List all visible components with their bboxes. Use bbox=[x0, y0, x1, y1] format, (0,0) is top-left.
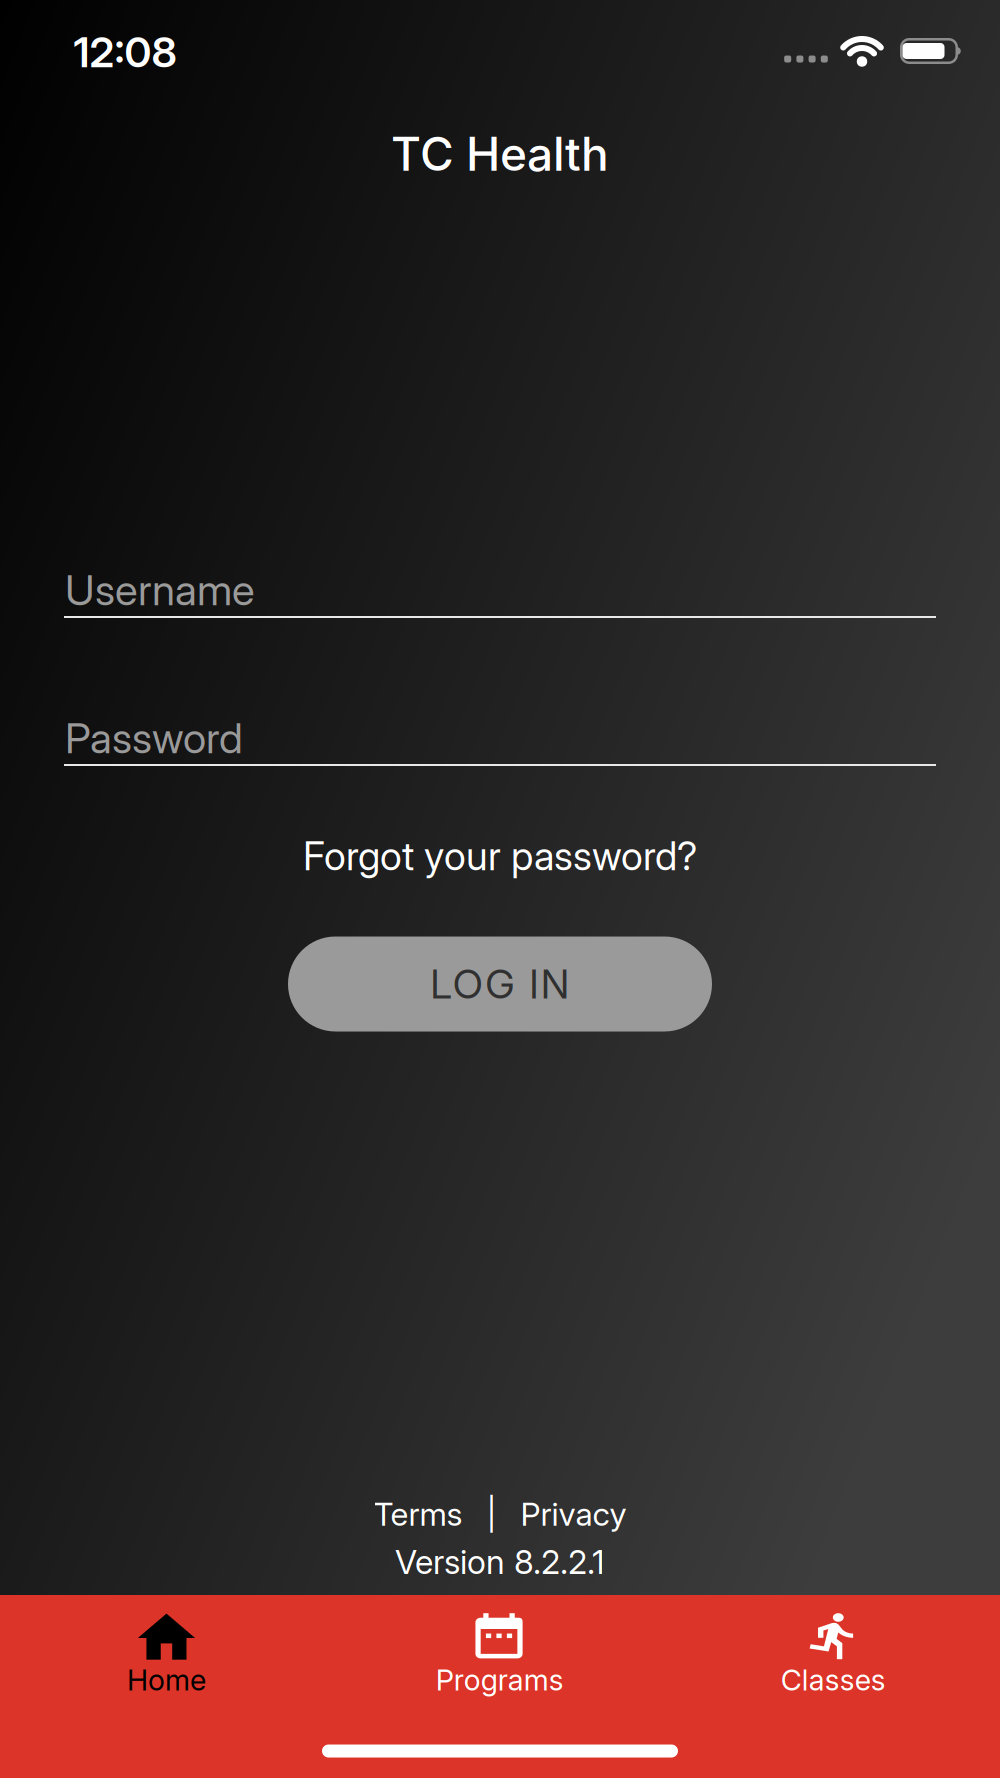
staticText: Programs bbox=[436, 1662, 564, 1698]
staticText: Home bbox=[127, 1662, 206, 1698]
button[interactable]: Terms bbox=[373, 1495, 462, 1533]
button[interactable]: Password bbox=[0, 712, 1000, 766]
staticText: TC Health bbox=[391, 126, 609, 182]
staticText: Password bbox=[65, 713, 243, 763]
button[interactable]: Programs bbox=[333, 1595, 667, 1778]
button[interactable]: Username bbox=[0, 564, 1000, 618]
staticText: 12:08 bbox=[73, 27, 176, 77]
staticText: | bbox=[486, 1495, 496, 1533]
staticText: Forgot your password? bbox=[303, 832, 697, 880]
button[interactable]: LOG IN bbox=[288, 936, 712, 1031]
button[interactable]: Forgot your password? bbox=[303, 832, 697, 880]
button[interactable]: Classes bbox=[667, 1595, 1000, 1778]
staticText: Username bbox=[65, 565, 255, 615]
button[interactable]: Privacy bbox=[520, 1495, 626, 1533]
staticText: LOG IN bbox=[430, 960, 570, 1008]
staticText: Privacy bbox=[520, 1495, 626, 1533]
button[interactable]: Home bbox=[0, 1595, 333, 1778]
staticText: Terms bbox=[373, 1495, 462, 1533]
staticText: Classes bbox=[781, 1662, 886, 1698]
staticText: Version 8.2.2.1 bbox=[395, 1542, 605, 1582]
